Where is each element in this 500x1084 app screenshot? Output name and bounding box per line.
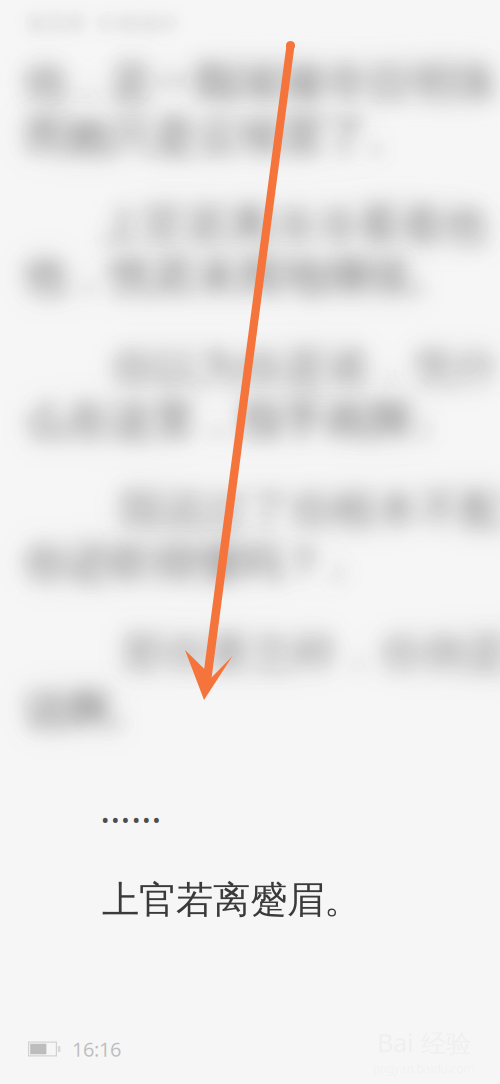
button[interactable]: Previous page (0, 0, 150, 1084)
staticText: …… (100, 782, 162, 834)
button[interactable]: Next page (350, 0, 500, 1084)
staticText: 16:16 (72, 1036, 121, 1062)
button[interactable]: Show reader menu (150, 0, 350, 1084)
staticText: 上官若离蹙眉。 (102, 877, 361, 923)
